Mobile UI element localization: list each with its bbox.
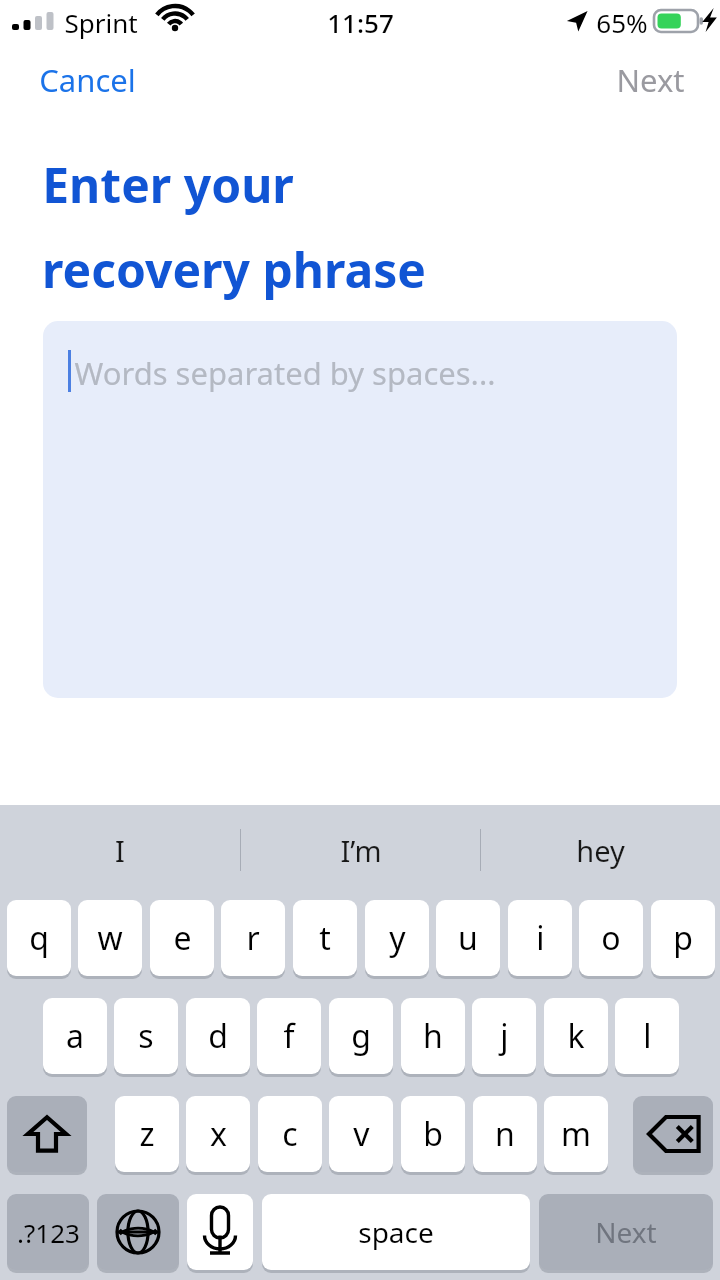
staticText: Enter your bbox=[42, 152, 294, 217]
staticText: j bbox=[500, 1014, 509, 1058]
staticText: f bbox=[283, 1014, 295, 1058]
staticText: x bbox=[210, 1112, 227, 1156]
staticText: m bbox=[561, 1112, 591, 1156]
staticText: b bbox=[423, 1112, 443, 1156]
button[interactable]: d bbox=[186, 998, 250, 1074]
button[interactable]: f bbox=[257, 998, 321, 1074]
staticText: Words separated by spaces... bbox=[74, 352, 496, 394]
button[interactable]: m bbox=[544, 1096, 608, 1172]
button[interactable]: Backspace bbox=[633, 1096, 713, 1172]
staticText: g bbox=[351, 1014, 371, 1058]
button[interactable]: t bbox=[293, 900, 357, 976]
staticText: Sprint bbox=[64, 5, 138, 40]
button[interactable]: q bbox=[7, 900, 71, 976]
button[interactable]: b bbox=[401, 1096, 465, 1172]
staticText: Next bbox=[616, 59, 685, 101]
staticText: z bbox=[139, 1112, 155, 1156]
staticText: Cancel bbox=[39, 59, 136, 101]
staticText: .?123 bbox=[17, 1215, 80, 1250]
button[interactable]: s bbox=[114, 998, 178, 1074]
button[interactable]: u bbox=[436, 900, 500, 976]
staticText: hey bbox=[576, 831, 625, 870]
staticText: v bbox=[353, 1112, 370, 1156]
button[interactable]: hey bbox=[481, 805, 720, 895]
staticText: Next bbox=[595, 1213, 657, 1251]
button[interactable]: v bbox=[329, 1096, 393, 1172]
button[interactable]: .?123 bbox=[7, 1194, 89, 1270]
staticText: a bbox=[66, 1014, 84, 1058]
button[interactable]: y bbox=[365, 900, 429, 976]
button[interactable]: I’m bbox=[241, 805, 480, 895]
button[interactable]: g bbox=[329, 998, 393, 1074]
staticText: 11:57 bbox=[327, 5, 394, 40]
button[interactable]: i bbox=[508, 900, 572, 976]
staticText: n bbox=[495, 1112, 515, 1156]
staticText: k bbox=[567, 1014, 585, 1058]
button[interactable]: l bbox=[615, 998, 679, 1074]
button[interactable]: n bbox=[473, 1096, 537, 1172]
button[interactable]: Next bbox=[539, 1194, 713, 1270]
staticText: l bbox=[643, 1014, 652, 1058]
staticText: i bbox=[536, 916, 545, 960]
staticText: d bbox=[208, 1014, 228, 1058]
staticText: p bbox=[673, 916, 693, 960]
button[interactable]: space bbox=[262, 1194, 530, 1270]
button[interactable]: Dictate bbox=[187, 1194, 253, 1270]
button[interactable]: x bbox=[186, 1096, 250, 1172]
button[interactable]: I bbox=[0, 805, 240, 895]
staticText: t bbox=[319, 916, 331, 960]
button[interactable]: r bbox=[221, 900, 285, 976]
button[interactable]: w bbox=[78, 900, 142, 976]
staticText: s bbox=[138, 1014, 154, 1058]
staticText: r bbox=[246, 916, 260, 960]
staticText: I’m bbox=[340, 831, 382, 870]
staticText: 65% bbox=[596, 5, 648, 40]
button[interactable]: c bbox=[258, 1096, 322, 1172]
staticText: I bbox=[115, 831, 125, 870]
staticText: e bbox=[173, 916, 192, 960]
button[interactable]: z bbox=[115, 1096, 179, 1172]
button[interactable]: k bbox=[544, 998, 608, 1074]
staticText: space bbox=[358, 1213, 434, 1251]
button[interactable]: e bbox=[150, 900, 214, 976]
button[interactable]: Words separated by spaces... bbox=[43, 321, 677, 698]
button[interactable]: Shift bbox=[7, 1096, 87, 1172]
button[interactable]: h bbox=[401, 998, 465, 1074]
staticText: recovery phrase bbox=[42, 237, 426, 302]
staticText: c bbox=[282, 1112, 298, 1156]
staticText: y bbox=[389, 916, 406, 960]
button[interactable]: a bbox=[43, 998, 107, 1074]
button[interactable]: j bbox=[472, 998, 536, 1074]
staticText: u bbox=[458, 916, 478, 960]
button[interactable]: Cancel bbox=[30, 52, 145, 108]
button[interactable]: p bbox=[651, 900, 715, 976]
staticText: h bbox=[423, 1014, 443, 1058]
staticText: o bbox=[601, 916, 621, 960]
button[interactable]: o bbox=[579, 900, 643, 976]
staticText: w bbox=[97, 916, 123, 960]
button[interactable]: Next bbox=[607, 52, 694, 108]
staticText: q bbox=[29, 916, 49, 960]
button[interactable]: Change keyboard bbox=[97, 1194, 179, 1270]
